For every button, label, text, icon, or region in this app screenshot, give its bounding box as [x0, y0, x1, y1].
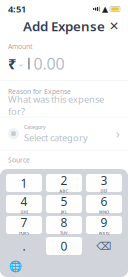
- staticText: MNO: [99, 209, 109, 215]
- staticText: 9: [100, 214, 107, 230]
- button[interactable]: 5: [46, 195, 82, 213]
- staticText: GHI: [20, 209, 27, 215]
- button[interactable]: 0: [46, 237, 82, 255]
- staticText: Amount: [8, 42, 32, 51]
- staticText: .: [22, 238, 25, 254]
- button[interactable]: What was this expense for?: [8, 100, 120, 111]
- button[interactable]: 2: [46, 174, 82, 192]
- staticText: ⌄: [17, 59, 24, 68]
- staticText: What was this expense for?: [8, 93, 104, 118]
- staticText: 0: [60, 238, 67, 254]
- staticText: 4:51: [8, 3, 26, 15]
- staticText: 7: [20, 214, 27, 230]
- staticText: 6: [100, 193, 107, 209]
- staticText: Category: [24, 123, 46, 130]
- staticText: Add Expense: [23, 17, 105, 35]
- button[interactable]: 7: [6, 216, 42, 234]
- button[interactable]: 6: [86, 195, 122, 213]
- staticText: WXYZ: [98, 230, 109, 236]
- staticText: JKL: [61, 209, 67, 215]
- staticText: 2: [60, 172, 67, 188]
- staticText: Source: [8, 155, 30, 164]
- button[interactable]: 4: [6, 195, 42, 213]
- button[interactable]: 9: [86, 216, 122, 234]
- staticText: 🌐: [8, 260, 21, 272]
- staticText: Reason for Expense: [8, 87, 71, 96]
- button[interactable]: Select currency: [8, 53, 24, 74]
- staticText: DEF: [100, 188, 107, 194]
- staticText: ⌫: [96, 240, 111, 252]
- staticText: TUV: [60, 230, 68, 236]
- staticText: ABC: [59, 188, 68, 194]
- button[interactable]: Decimal point: [6, 237, 42, 255]
- button[interactable]: 3: [86, 174, 122, 192]
- staticText: 4: [20, 193, 27, 209]
- button[interactable]: Delete: [86, 237, 122, 255]
- staticText: ›: [116, 126, 120, 142]
- staticText: Select category: [24, 131, 88, 144]
- button[interactable]: 1: [6, 174, 42, 192]
- staticText: 1: [20, 175, 27, 191]
- staticText: ▲: [102, 4, 108, 14]
- button[interactable]: Close: [105, 17, 123, 35]
- button[interactable]: 8: [46, 216, 82, 234]
- button[interactable]: Category: [0, 117, 128, 150]
- staticText: PQRS: [19, 230, 29, 236]
- staticText: 0.00: [33, 53, 64, 74]
- button[interactable]: Next keyboard: [7, 259, 23, 273]
- staticText: 3: [100, 172, 107, 188]
- staticText: ✕: [109, 19, 119, 33]
- staticText: 8: [60, 214, 67, 230]
- staticText: 5: [60, 193, 67, 209]
- staticText: ₹: [8, 54, 16, 73]
